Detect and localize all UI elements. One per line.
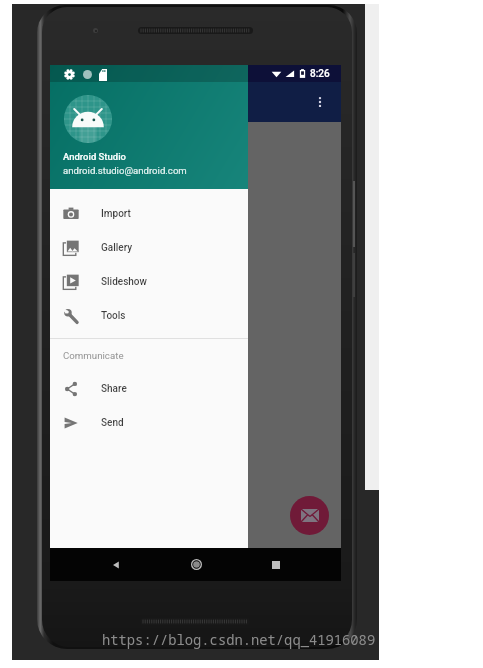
staticText: Send [101, 417, 124, 429]
staticText: Import [101, 208, 131, 220]
staticText: 8:26 [310, 68, 330, 80]
button[interactable]: Slideshow [50, 265, 248, 299]
staticText: https://blog.csdn.net/qq_41916089 [102, 630, 376, 649]
staticText: android.studio@android.com [63, 165, 187, 176]
button[interactable]: Share [50, 372, 248, 406]
button[interactable]: More options [307, 89, 333, 115]
staticText: Communicate [63, 350, 124, 361]
button[interactable]: Home [180, 548, 213, 581]
button[interactable]: Gallery [50, 231, 248, 265]
button[interactable]: Send email [290, 496, 329, 535]
staticText: Slideshow [101, 276, 147, 288]
button[interactable]: Send [50, 406, 248, 440]
button[interactable]: Import [50, 197, 248, 231]
staticText: Tools [101, 310, 126, 322]
staticText: Share [101, 383, 127, 395]
staticText: Gallery [101, 242, 133, 254]
button[interactable]: Tools [50, 299, 248, 333]
button[interactable]: Back [100, 548, 132, 581]
staticText: Android Studio [63, 151, 126, 162]
button[interactable]: Recents [260, 548, 292, 581]
